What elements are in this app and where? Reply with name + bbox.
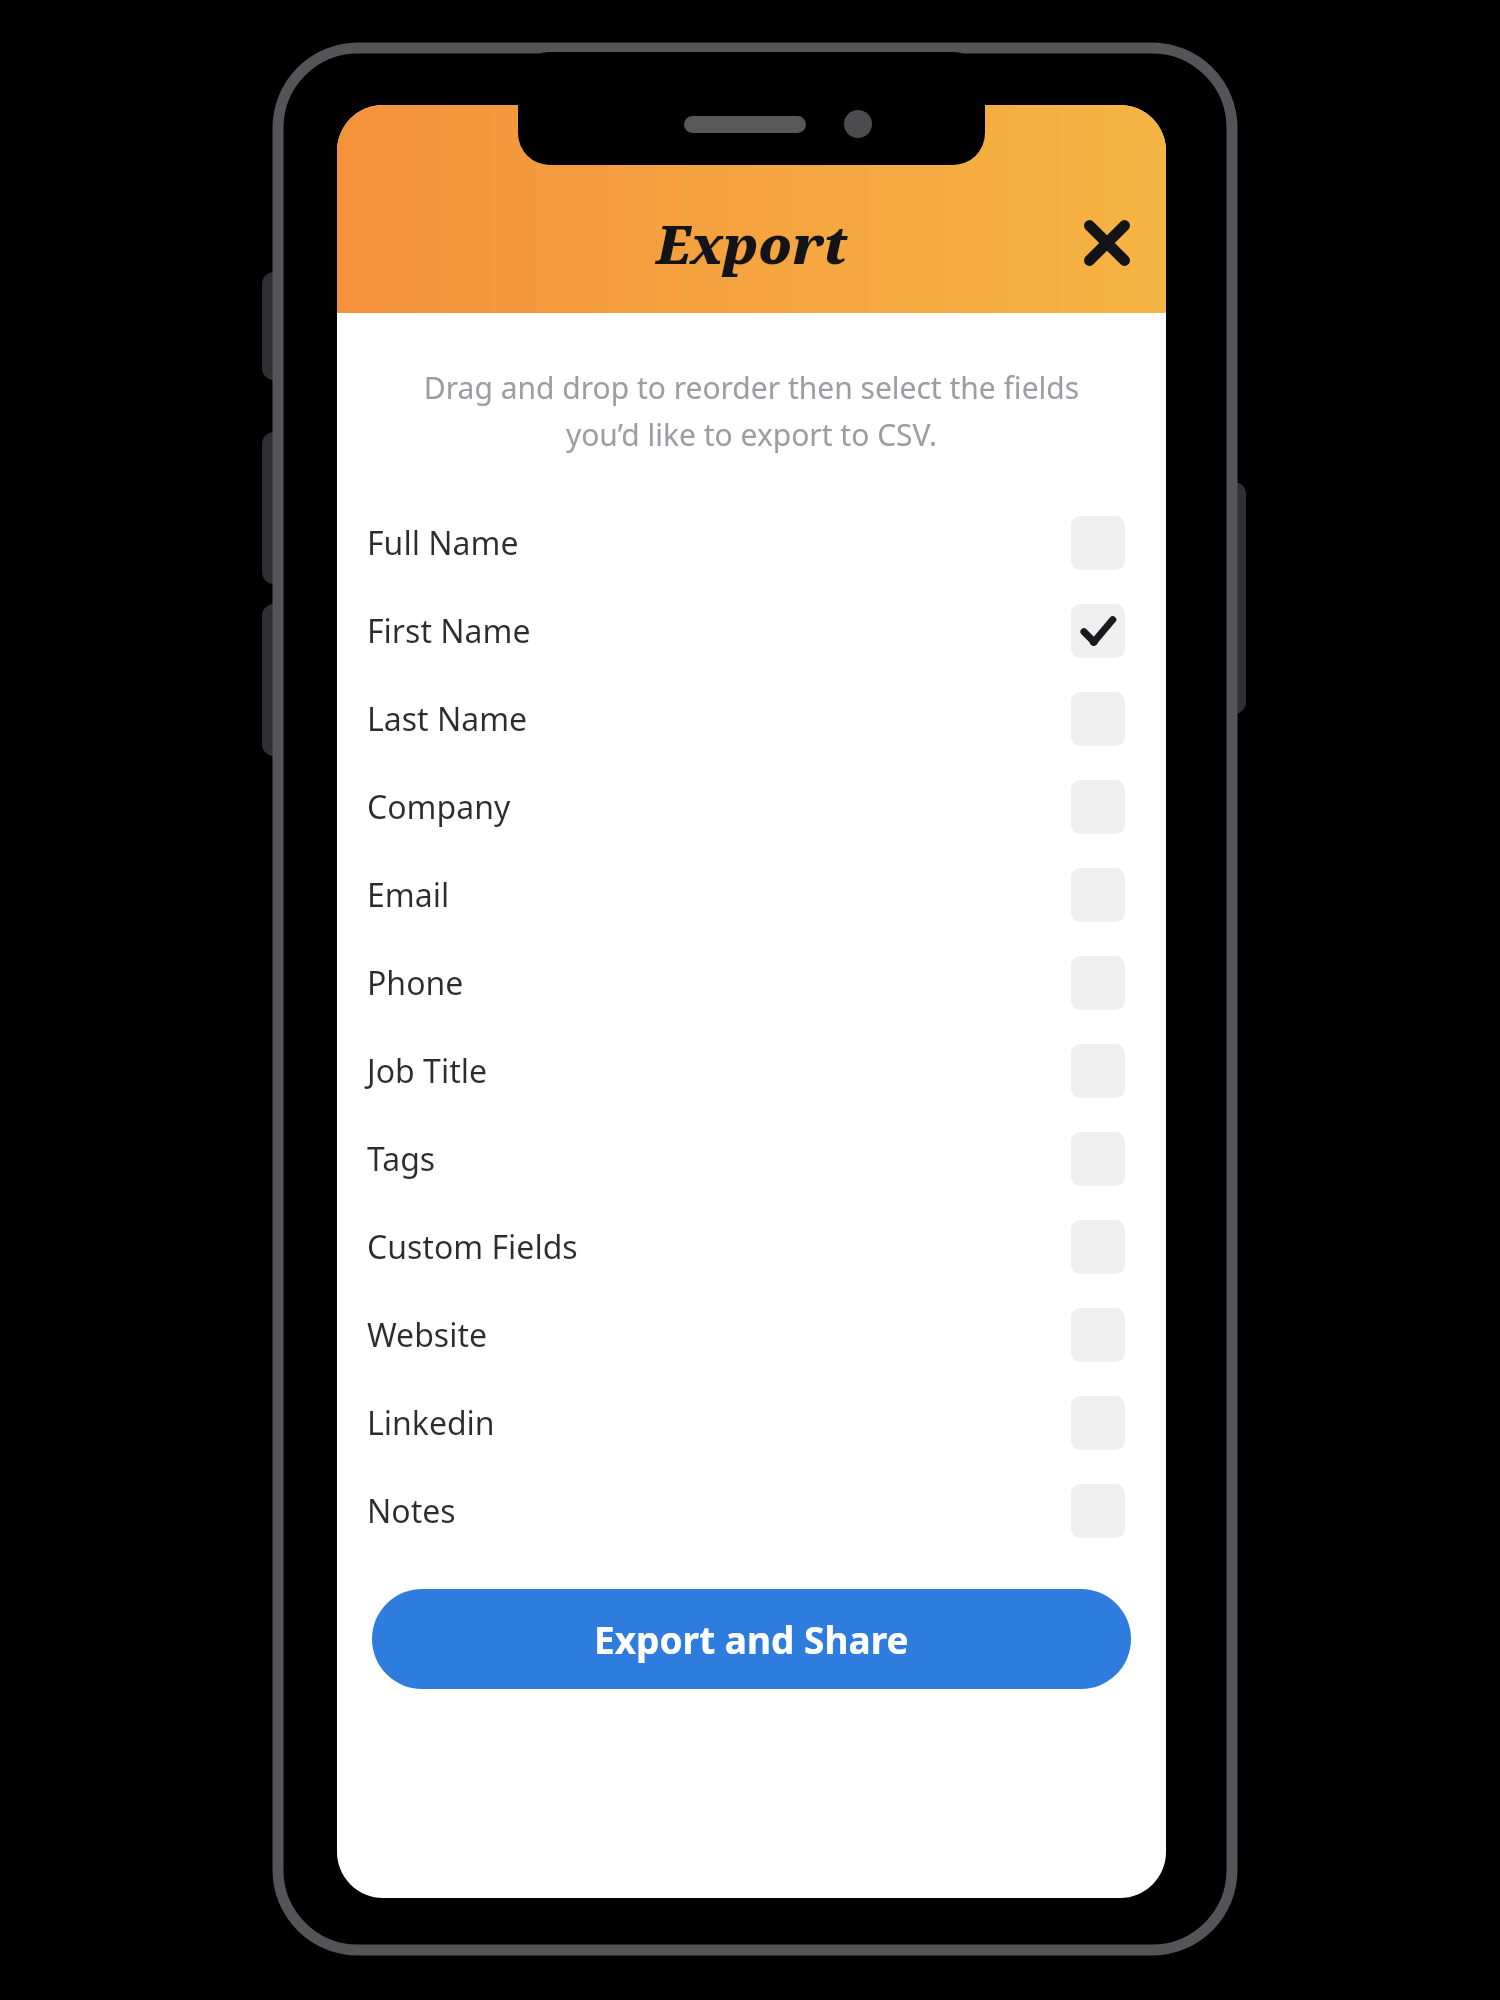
button[interactable]: Job Title <box>337 1027 1166 1115</box>
button[interactable]: Phone <box>337 939 1166 1027</box>
button[interactable]: Notes <box>337 1467 1166 1555</box>
button[interactable]: Email <box>337 851 1166 939</box>
staticText: Export <box>656 208 848 279</box>
button[interactable]: Company <box>337 763 1166 851</box>
button[interactable]: Export and Share <box>372 1589 1131 1689</box>
staticText: Email <box>367 873 1071 917</box>
staticText: Job Title <box>367 1049 1071 1093</box>
staticText: Tags <box>367 1137 1071 1181</box>
staticText: Custom Fields <box>367 1225 1071 1269</box>
staticText: Phone <box>367 961 1071 1005</box>
button[interactable]: Close <box>1066 202 1148 284</box>
staticText: Last Name <box>367 697 1071 741</box>
staticText: Full Name <box>367 521 1071 565</box>
button[interactable]: Custom Fields <box>337 1203 1166 1291</box>
staticText: Company <box>367 785 1071 829</box>
button[interactable]: First Name <box>337 587 1166 675</box>
staticText: Linkedin <box>367 1401 1071 1445</box>
staticText: Export and Share <box>594 1614 909 1664</box>
button[interactable]: Tags <box>337 1115 1166 1203</box>
staticText: Website <box>367 1313 1071 1357</box>
staticText: First Name <box>367 609 1071 653</box>
button[interactable]: Website <box>337 1291 1166 1379</box>
staticText: Notes <box>367 1489 1071 1533</box>
button[interactable]: Full Name <box>337 499 1166 587</box>
staticText: Drag and drop to reorder then select the… <box>363 367 1140 455</box>
button[interactable]: Linkedin <box>337 1379 1166 1467</box>
button[interactable]: Last Name <box>337 675 1166 763</box>
